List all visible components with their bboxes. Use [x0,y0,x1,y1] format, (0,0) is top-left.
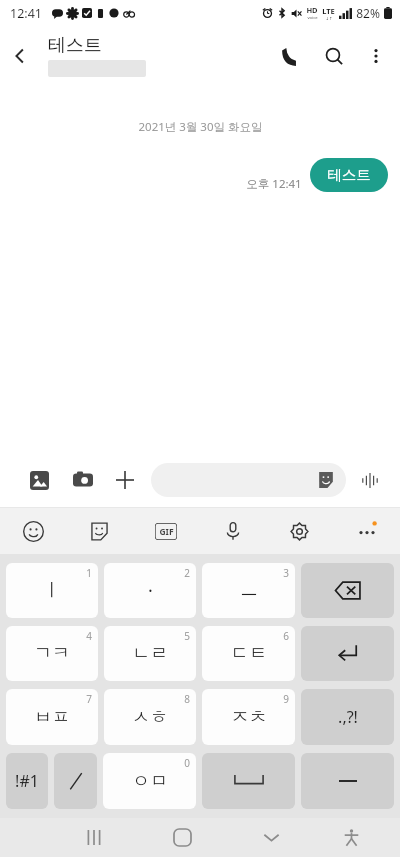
staticText: ↓↑ [325,16,333,21]
button[interactable]: ㅣ [6,563,98,618]
button[interactable]: Search [312,34,356,78]
button[interactable]: Space [202,753,295,809]
button[interactable]: Dash [301,753,394,809]
staticText: GIF [159,526,174,538]
staticText: HD [306,5,318,15]
button[interactable]: Add attachment [108,463,142,497]
other: Stickers [316,470,336,490]
button[interactable]: ㄷㅌ [202,626,295,681]
staticText: 테스트 [48,34,102,57]
staticText: ㄱㅋ [34,642,70,665]
button[interactable]: Camera [66,463,100,497]
staticText: ㅅㅎ [132,706,168,729]
staticText: 12:41 [10,5,42,22]
staticText: 2021년 3월 30일 화요일 [138,119,263,135]
staticText: !#1 [15,770,39,792]
staticText: voice [307,15,318,21]
button[interactable]: ㄱㅋ [6,626,98,681]
staticText: 4 [86,629,92,643]
button[interactable]: Accessibility [316,818,387,857]
staticText: ㅡ [240,579,258,602]
button[interactable]: more [333,508,400,554]
staticText: ㄷㅌ [231,642,267,665]
staticText: 5 [184,629,190,643]
staticText: ㄴㄹ [132,642,168,665]
staticText: .,?! [338,706,358,728]
staticText: ㅈㅊ [231,706,267,729]
button[interactable]: Back [0,36,40,76]
button[interactable]: sticker [66,508,132,554]
button[interactable]: gif [132,508,199,554]
button[interactable]: 테스트 [310,158,388,192]
button[interactable]: mic [199,508,266,554]
staticText: ㅇㅁ [132,770,168,793]
staticText: ㅂㅍ [34,706,70,729]
button[interactable]: Stickers [151,463,346,497]
staticText: 0 [184,756,190,770]
staticText: 8 [184,692,190,706]
button[interactable]: Hide keyboard [227,818,316,857]
button[interactable]: ㅈㅊ [202,689,295,745]
button[interactable]: Call [268,34,312,78]
button[interactable]: ㅂㅍ [6,689,98,745]
button[interactable]: ㅅㅎ [104,689,196,745]
staticText: 3 [283,566,289,580]
staticText: 2 [184,566,190,580]
button[interactable]: Gallery [22,463,56,497]
staticText: 테스트 [327,166,371,184]
button[interactable]: .,?! [301,689,394,745]
staticText: 1 [86,566,92,580]
staticText: 7 [86,692,92,706]
button[interactable]: Symbols [6,753,48,809]
staticText: LTE [322,6,335,16]
button[interactable]: Voice message [354,464,386,496]
staticText: · [148,578,153,603]
button[interactable]: ㅇㅁ [103,753,196,809]
button[interactable]: emoji [0,508,66,554]
staticText: ㅣ [43,579,61,602]
button[interactable]: · [104,563,196,618]
button[interactable]: ㄴㄹ [104,626,196,681]
staticText: 82% [356,5,380,21]
button[interactable]: ㅡ [202,563,295,618]
button[interactable]: Home [138,818,227,857]
staticText: 6 [283,629,289,643]
button[interactable]: Enter [301,626,394,681]
button[interactable]: Backspace [301,563,394,618]
staticText: 9 [283,692,289,706]
button[interactable]: More options [356,36,396,76]
button[interactable]: Language [54,753,97,809]
button[interactable]: settings [266,508,333,554]
button[interactable]: Recents [49,818,138,857]
staticText: 오후 12:41 [246,176,302,192]
